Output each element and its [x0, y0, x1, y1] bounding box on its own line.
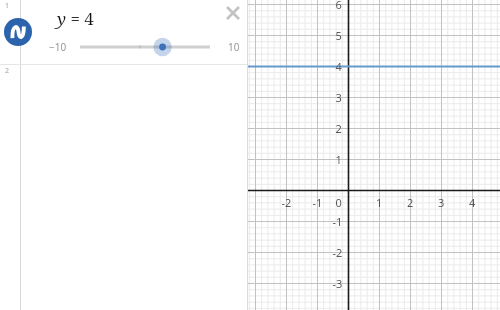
button[interactable]: Close: [220, 0, 246, 26]
button[interactable]: Toggle graph visibility: [4, 18, 32, 46]
button[interactable]: Slider: [48, 36, 244, 58]
